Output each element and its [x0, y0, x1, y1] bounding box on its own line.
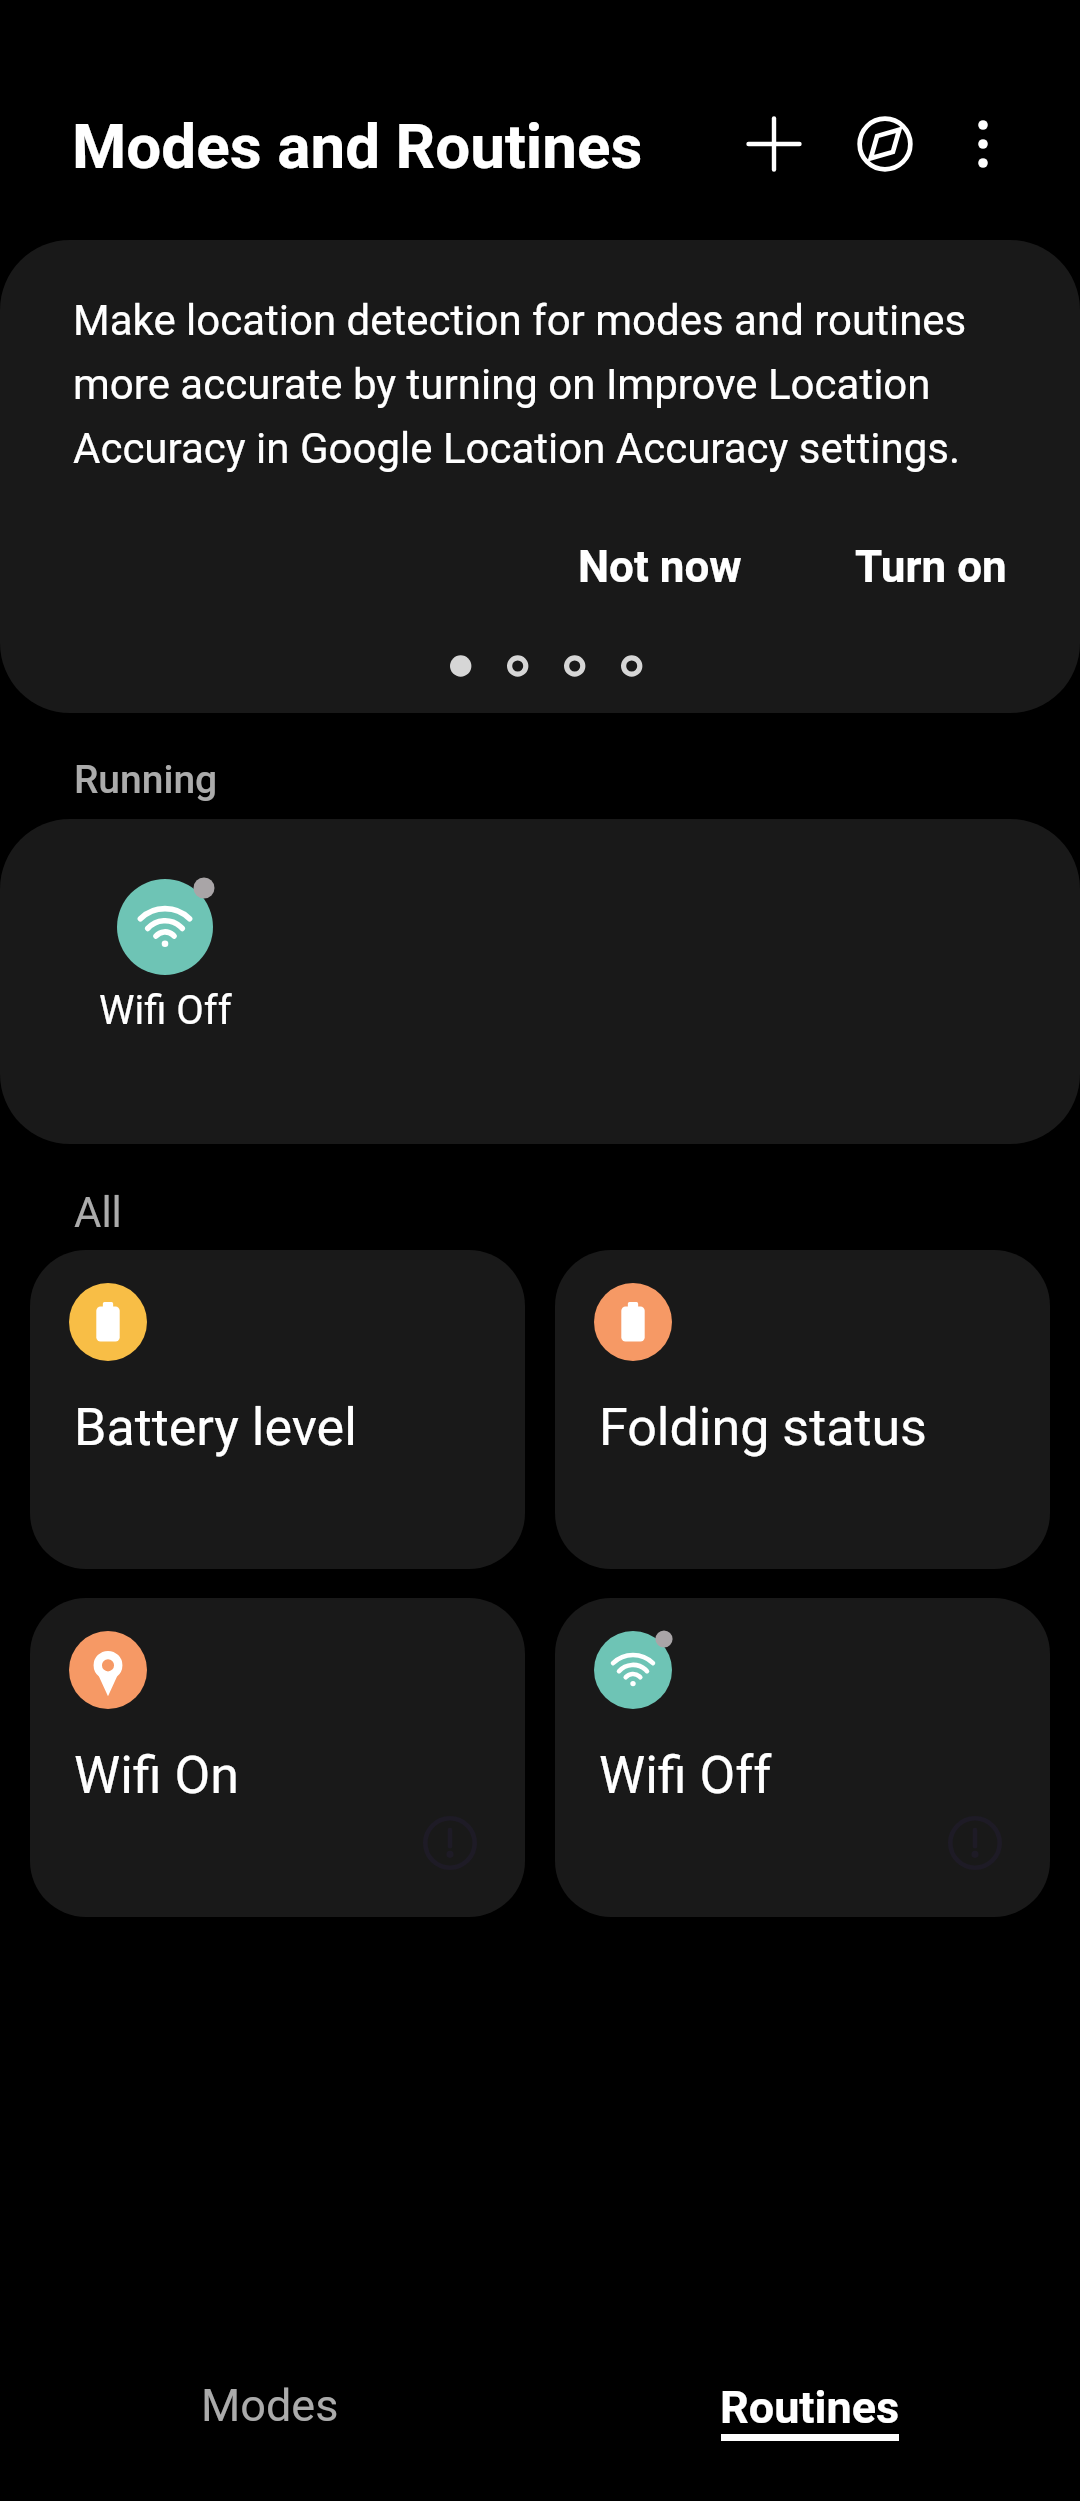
- button[interactable]: Wifi Off: [62, 843, 268, 1058]
- button[interactable]: Battery level: [30, 1250, 525, 1569]
- button[interactable]: Wifi On: [30, 1598, 525, 1917]
- staticText: Battery level: [74, 1397, 357, 1458]
- button[interactable]: Discover: [838, 97, 932, 191]
- staticText: Folding status: [599, 1397, 927, 1458]
- button[interactable]: Add: [727, 97, 821, 191]
- button[interactable]: Modes: [0, 2311, 540, 2501]
- staticText: Modes and Routines: [72, 110, 643, 183]
- button[interactable]: Folding status: [555, 1250, 1050, 1569]
- staticText: Routines: [720, 2381, 900, 2434]
- staticText: Running: [74, 757, 218, 803]
- button[interactable]: More options: [936, 97, 1030, 191]
- staticText: Wifi On: [74, 1745, 239, 1806]
- staticText: Not now: [578, 541, 742, 593]
- staticText: Make location detection for modes and ro…: [73, 296, 990, 473]
- button[interactable]: Not now: [558, 525, 762, 609]
- staticText: Turn on: [855, 541, 1007, 593]
- button[interactable]: Wifi Off: [555, 1598, 1050, 1917]
- staticText: All: [74, 1188, 122, 1237]
- button[interactable]: Turn on: [835, 525, 1027, 609]
- staticText: Wifi Off: [99, 987, 232, 1034]
- staticText: Wifi Off: [599, 1745, 772, 1806]
- staticText: Modes: [201, 2379, 339, 2432]
- button[interactable]: Routines: [540, 2311, 1080, 2501]
